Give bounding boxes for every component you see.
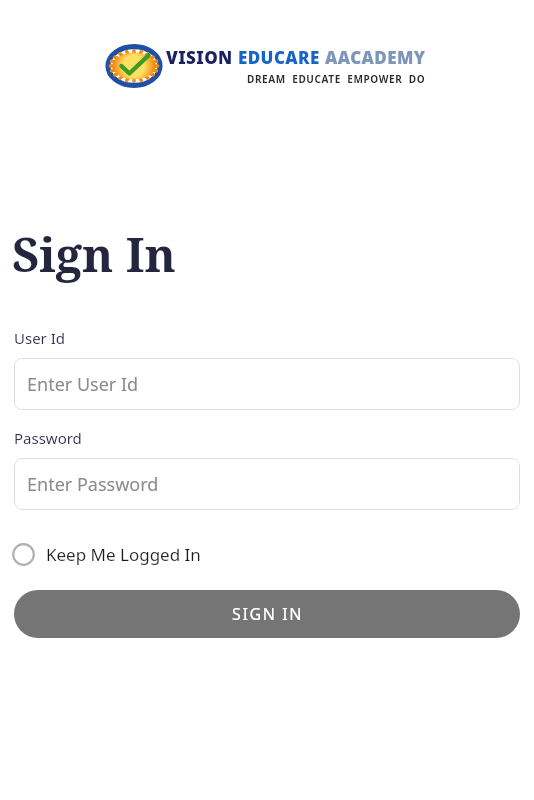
staticText: Sign In: [12, 222, 176, 286]
staticText: AACADEMY: [325, 46, 426, 69]
button[interactable]: Enter User Id: [14, 358, 520, 410]
other: Vision Educare Aacademy logo: [108, 44, 160, 88]
button[interactable]: Enter Password: [14, 458, 520, 510]
staticText: EDUCARE: [238, 46, 325, 69]
staticText: VISION: [166, 46, 238, 69]
staticText: Keep Me Logged In: [46, 543, 201, 566]
button[interactable]: Keep me logged in toggle: [12, 540, 209, 569]
staticText: Password: [14, 428, 82, 448]
staticText: DREAM EDUCATE EMPOWER DO: [247, 72, 426, 86]
staticText: User Id: [14, 328, 66, 348]
staticText: SIGN IN: [232, 603, 303, 625]
button[interactable]: SIGN IN: [14, 590, 520, 638]
staticText: Enter User Id: [27, 372, 139, 397]
other: Keep me logged in toggle: [12, 543, 35, 566]
staticText: Enter Password: [27, 472, 159, 497]
